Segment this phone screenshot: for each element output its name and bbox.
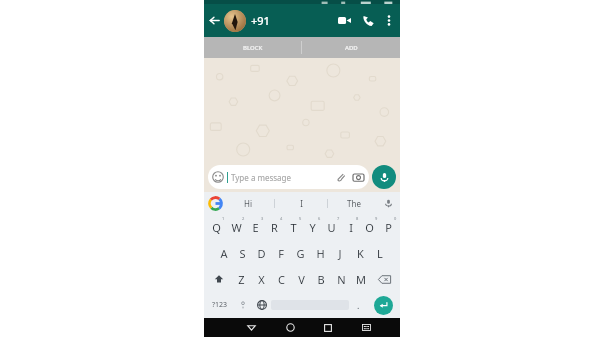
button[interactable]: B: [311, 266, 331, 292]
button[interactable]: F: [271, 240, 290, 266]
button[interactable]: Voice input: [380, 195, 396, 211]
staticText: J: [338, 246, 342, 261]
staticText: R: [271, 220, 278, 235]
staticText: +91: [251, 13, 270, 28]
staticText: 6: [318, 216, 321, 221]
staticText: I: [300, 198, 303, 209]
button[interactable]: Hi: [222, 192, 274, 214]
button[interactable]: Contact photo: [224, 10, 246, 32]
staticText: 7: [337, 216, 340, 221]
button[interactable]: Enter: [374, 296, 393, 315]
button[interactable]: N: [331, 266, 351, 292]
staticText: 0: [394, 216, 397, 221]
button[interactable]: Z: [232, 266, 251, 292]
button[interactable]: X: [251, 266, 271, 292]
staticText: Q: [212, 220, 221, 235]
button[interactable]: D: [252, 240, 271, 266]
button[interactable]: J: [330, 240, 350, 266]
staticText: 2: [242, 216, 245, 221]
button[interactable]: Q: [206, 214, 226, 240]
button[interactable]: L: [370, 240, 390, 266]
button[interactable]: The: [328, 192, 380, 214]
button[interactable]: Record voice message: [372, 165, 396, 189]
button[interactable]: Camera: [350, 169, 366, 185]
button[interactable]: Keyboard: [347, 318, 385, 337]
staticText: Hi: [244, 198, 252, 209]
staticText: 9: [375, 216, 378, 221]
staticText: K: [357, 246, 364, 261]
staticText: O: [365, 220, 374, 235]
button[interactable]: Video call: [332, 4, 356, 37]
button[interactable]: W: [226, 214, 246, 240]
button[interactable]: H: [310, 240, 330, 266]
button[interactable]: Google: [209, 197, 222, 210]
staticText: D: [257, 246, 266, 261]
button[interactable]: More options: [380, 4, 398, 37]
button[interactable]: M: [351, 266, 371, 292]
staticText: N: [337, 272, 346, 287]
button[interactable]: I: [275, 192, 327, 214]
button[interactable]: Type a message: [208, 165, 369, 189]
staticText: V: [298, 272, 305, 287]
button[interactable]: Shift: [206, 266, 232, 292]
button[interactable]: Comma: [233, 292, 252, 318]
button[interactable]: T: [284, 214, 303, 240]
button[interactable]: Backspace: [371, 266, 398, 292]
button[interactable]: BLOCK: [204, 37, 301, 58]
button[interactable]: .: [349, 292, 368, 318]
staticText: 1: [222, 216, 225, 221]
staticText: Type a message: [231, 172, 332, 183]
staticText: E: [252, 220, 259, 235]
staticText: P: [385, 220, 392, 235]
staticText: M: [356, 272, 366, 287]
staticText: S: [239, 246, 246, 261]
staticText: I: [349, 220, 353, 235]
staticText: H: [316, 246, 325, 261]
button[interactable]: ?123: [206, 292, 233, 318]
staticText: F: [278, 246, 284, 261]
staticText: BLOCK: [243, 44, 263, 52]
staticText: ?123: [212, 300, 228, 310]
staticText: 3: [261, 216, 264, 221]
button[interactable]: C: [271, 266, 291, 292]
staticText: 5: [299, 216, 302, 221]
button[interactable]: E: [246, 214, 265, 240]
staticText: T: [290, 220, 297, 235]
button[interactable]: G: [290, 240, 310, 266]
button[interactable]: Attach: [332, 169, 348, 185]
button[interactable]: K: [350, 240, 370, 266]
button[interactable]: I: [341, 214, 360, 240]
staticText: B: [317, 272, 325, 287]
button[interactable]: R: [265, 214, 284, 240]
staticText: Y: [309, 220, 316, 235]
staticText: L: [377, 246, 383, 261]
staticText: U: [327, 220, 336, 235]
staticText: G: [296, 246, 305, 261]
staticText: Z: [238, 272, 245, 287]
staticText: A: [220, 246, 228, 261]
button[interactable]: U: [322, 214, 341, 240]
staticText: The: [347, 198, 361, 209]
button[interactable]: Home: [271, 318, 309, 337]
button[interactable]: V: [291, 266, 311, 292]
button[interactable]: Back: [204, 4, 224, 37]
button[interactable]: S: [233, 240, 252, 266]
button[interactable]: P: [379, 214, 398, 240]
staticText: X: [258, 272, 265, 287]
staticText: 8: [356, 216, 359, 221]
button[interactable]: O: [360, 214, 379, 240]
button[interactable]: Change language: [252, 292, 271, 318]
button[interactable]: ADD: [302, 37, 400, 58]
button[interactable]: Recent apps: [309, 318, 347, 337]
staticText: C: [278, 272, 285, 287]
button[interactable]: A: [214, 240, 233, 266]
staticText: W: [231, 220, 242, 235]
staticText: 4: [280, 216, 283, 221]
button[interactable]: Y: [303, 214, 322, 240]
staticText: ADD: [345, 44, 358, 52]
staticText: .: [357, 299, 360, 311]
button[interactable]: Back: [232, 318, 271, 337]
button[interactable]: Voice call: [356, 4, 380, 37]
